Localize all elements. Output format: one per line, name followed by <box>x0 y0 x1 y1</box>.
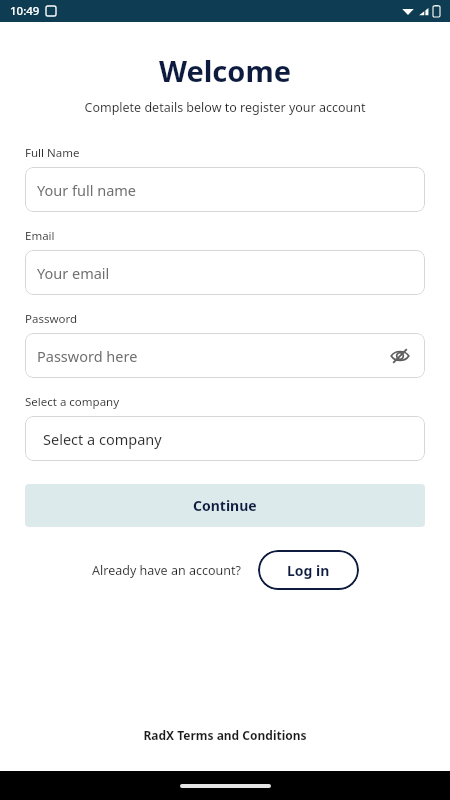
staticText: Email <box>25 228 55 244</box>
button[interactable]: Continue <box>25 484 425 527</box>
staticText: Full Name <box>25 145 80 161</box>
staticText: Select a company <box>25 394 120 410</box>
button[interactable]: Your email <box>25 250 425 295</box>
staticText: Log in <box>287 561 330 580</box>
staticText: Your email <box>37 263 413 283</box>
staticText: Continue <box>193 496 257 515</box>
button[interactable]: Select a company <box>25 416 425 461</box>
button[interactable]: Your full name <box>25 167 425 212</box>
staticText: Already have an account? <box>92 562 241 579</box>
button[interactable]: Toggle password visibility <box>387 343 413 369</box>
button[interactable]: Password here <box>25 333 425 378</box>
staticText: Welcome <box>0 51 450 90</box>
staticText: Complete details below to register your … <box>0 99 450 116</box>
staticText: Select a company <box>43 429 413 449</box>
staticText: 10:49 <box>10 3 40 19</box>
staticText: Your full name <box>37 180 413 200</box>
staticText: Password <box>25 311 78 327</box>
staticText: Password here <box>37 346 387 366</box>
button[interactable]: RadX Terms and Conditions <box>0 727 450 743</box>
staticText: RadX Terms and Conditions <box>143 727 307 743</box>
button[interactable]: Log in <box>258 550 359 590</box>
